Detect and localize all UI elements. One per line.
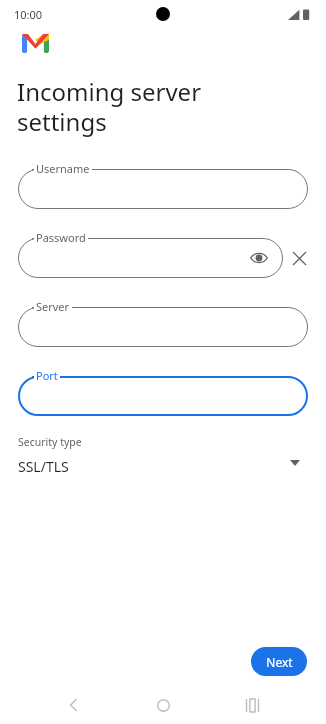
staticText: Incoming server settings [17, 75, 202, 138]
button[interactable]: Back [60, 691, 88, 719]
staticText: 10:00 [14, 7, 43, 22]
button[interactable]: Home [149, 691, 177, 719]
staticText: Server [36, 299, 70, 314]
button[interactable]: Show password [247, 246, 271, 270]
button[interactable]: Clear password [286, 245, 312, 271]
staticText: Port [36, 368, 58, 383]
staticText: Password [36, 230, 86, 245]
staticText: Username [36, 161, 90, 176]
button[interactable]: Password [18, 230, 283, 278]
staticText: Security type [18, 435, 82, 449]
button[interactable]: Port [18, 368, 308, 416]
button[interactable]: Next [251, 647, 307, 676]
staticText: SSL/TLS [18, 457, 69, 476]
button[interactable]: Security type [18, 435, 308, 476]
button[interactable]: Username [18, 161, 308, 209]
button[interactable]: Server [18, 299, 308, 347]
button[interactable]: Recent apps [238, 691, 266, 719]
staticText: Next [266, 654, 293, 670]
